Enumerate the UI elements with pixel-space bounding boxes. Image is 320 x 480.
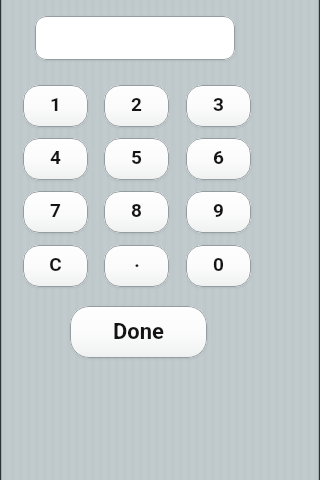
staticText: 8	[131, 199, 142, 221]
button[interactable]: 9	[186, 191, 251, 233]
staticText: 9	[213, 199, 224, 221]
button[interactable]: C	[23, 245, 88, 287]
staticText: C	[49, 253, 62, 275]
button[interactable]: .	[104, 245, 169, 287]
staticText: 3	[213, 93, 224, 115]
staticText: 5	[131, 146, 142, 168]
staticText: 7	[50, 199, 61, 221]
button[interactable]: 3	[186, 85, 251, 127]
button[interactable]: 2	[104, 85, 169, 127]
staticText: 1	[50, 93, 61, 115]
staticText: 0	[213, 253, 224, 275]
staticText: 2	[131, 93, 142, 115]
button[interactable]: 6	[186, 138, 251, 180]
button[interactable]: 4	[23, 138, 88, 180]
button[interactable]: 5	[104, 138, 169, 180]
staticText: 4	[50, 146, 61, 168]
staticText: 6	[213, 146, 224, 168]
button[interactable]: 8	[104, 191, 169, 233]
button[interactable]: 7	[23, 191, 88, 233]
staticText: .	[134, 249, 140, 271]
button[interactable]: Done	[70, 306, 207, 358]
button[interactable]: 1	[23, 85, 88, 127]
staticText: Done	[113, 319, 164, 345]
button[interactable]: 0	[186, 245, 251, 287]
button[interactable]: Number entry field	[35, 16, 235, 60]
